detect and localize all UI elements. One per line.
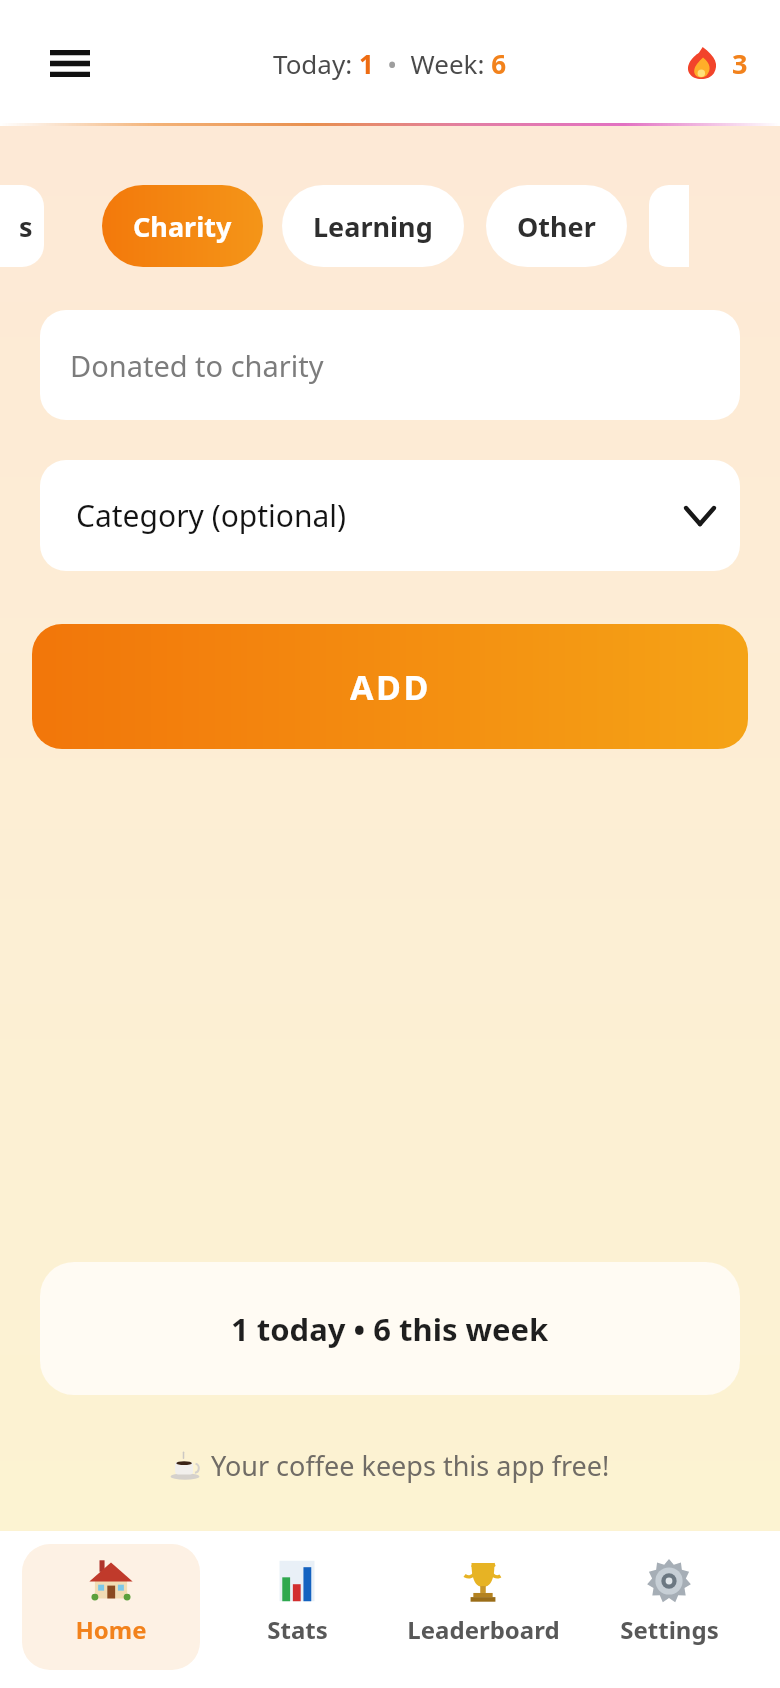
button[interactable]: Home — [22, 1544, 200, 1670]
button[interactable]: Charity — [102, 185, 263, 267]
staticText: Home — [75, 1613, 147, 1646]
button[interactable]: Streak — [677, 35, 756, 92]
staticText: Category (optional) — [76, 495, 347, 536]
button[interactable]: Donated to charity — [40, 310, 740, 420]
staticText: Stats — [267, 1613, 328, 1646]
button[interactable]: Stats — [208, 1544, 386, 1670]
button[interactable]: Category (optional) — [40, 460, 740, 571]
staticText: s — [19, 208, 33, 245]
button[interactable]: Menu — [32, 25, 108, 101]
staticText: Your coffee keeps this app free! — [211, 1447, 610, 1484]
button[interactable]: Learning — [282, 185, 464, 267]
staticText: Learning — [313, 208, 433, 245]
staticText: Leaderboard — [407, 1613, 560, 1646]
staticText: ADD — [350, 664, 431, 710]
staticText: Other — [517, 208, 596, 245]
staticText: Donated to charity — [70, 346, 324, 385]
button[interactable] — [649, 185, 689, 267]
button[interactable]: Other — [486, 185, 627, 267]
staticText: Today: 1 • Week: 6 — [273, 46, 507, 81]
staticText: 3 — [732, 45, 748, 82]
staticText: Charity — [133, 208, 232, 245]
staticText: 1 today • 6 this week — [231, 1308, 549, 1350]
button[interactable]: Leaderboard — [394, 1544, 572, 1670]
staticText: Settings — [620, 1613, 719, 1646]
button[interactable]: s — [0, 185, 44, 267]
button[interactable]: ADD — [32, 624, 748, 749]
button[interactable]: Settings — [580, 1544, 758, 1670]
button[interactable]: 1 today • 6 this week — [40, 1262, 740, 1395]
